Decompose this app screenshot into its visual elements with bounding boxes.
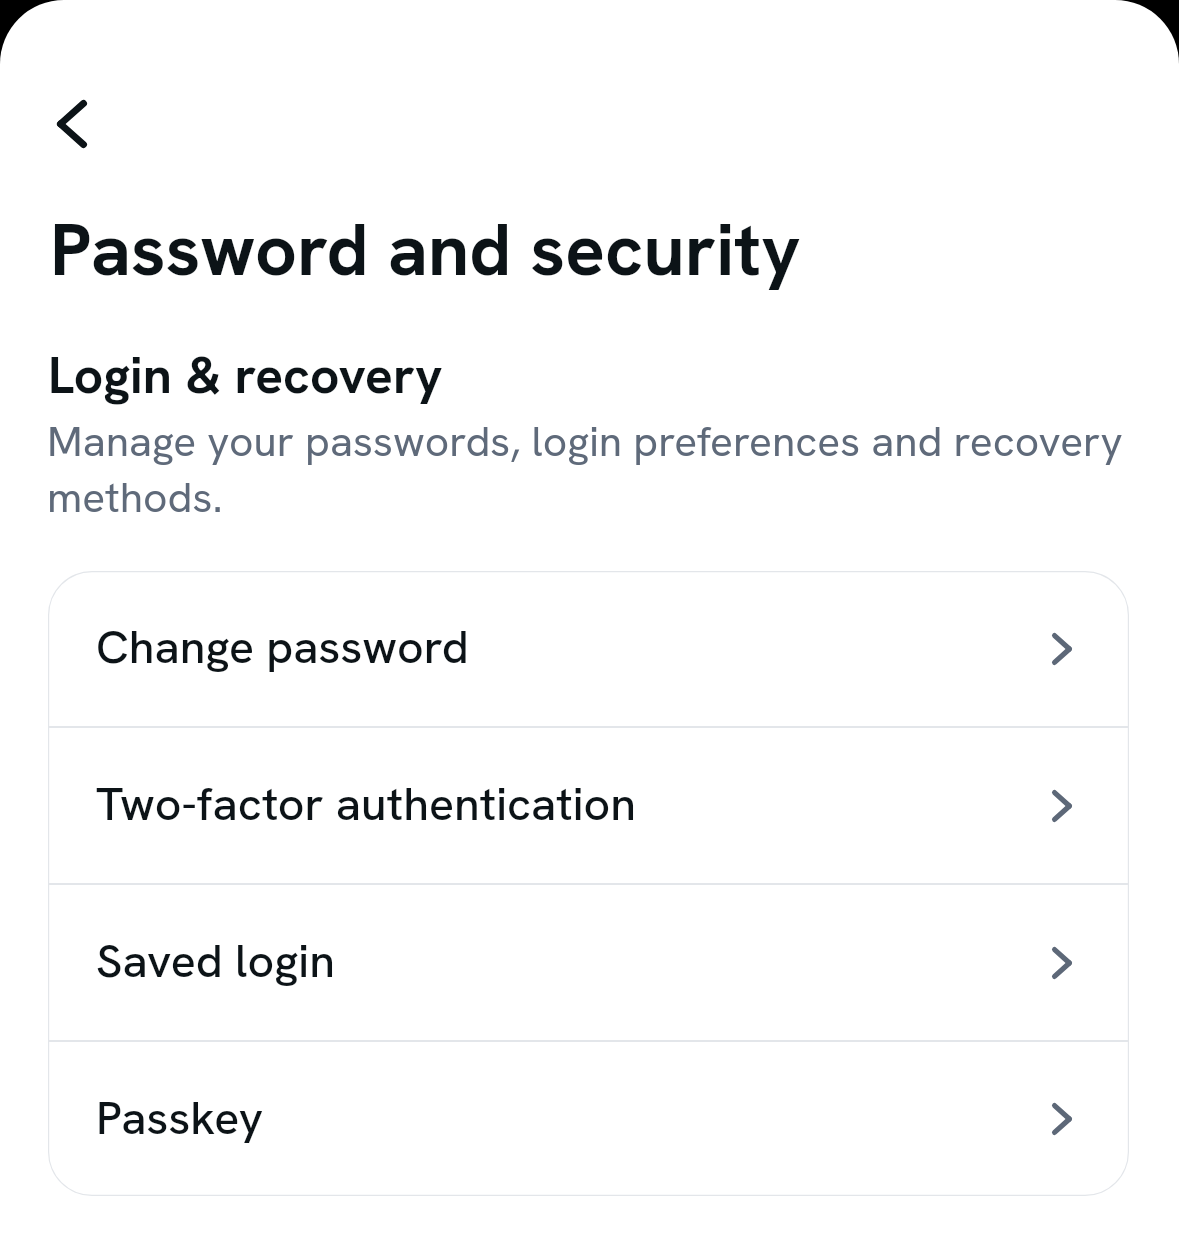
button[interactable]: Back [36,88,108,160]
staticText: Passkey [96,1087,264,1148]
staticText: Password and security [50,204,801,296]
staticText: Manage your passwords, login preferences… [47,413,1147,525]
button[interactable]: Saved login [48,885,1129,1040]
button[interactable]: Passkey [48,1042,1129,1196]
button[interactable]: Two-factor authentication [48,728,1129,883]
button[interactable]: Change password [48,571,1129,726]
staticText: Login & recovery [48,344,443,408]
staticText: Change password [96,616,469,677]
staticText: Two-factor authentication [96,773,636,834]
staticText: Saved login [96,930,335,991]
